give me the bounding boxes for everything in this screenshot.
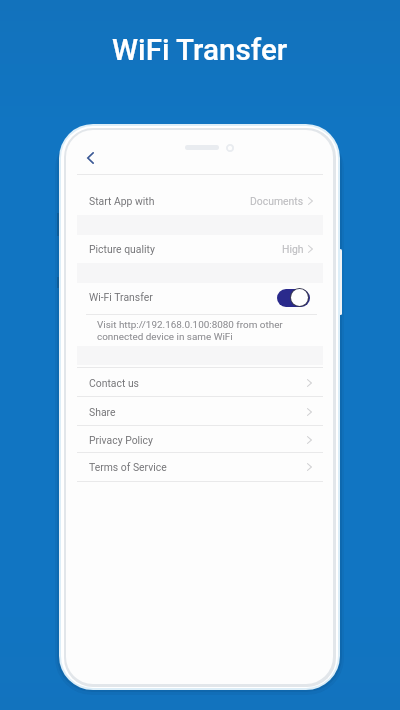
button[interactable]: Privacy Policy bbox=[77, 425, 323, 453]
button[interactable]: Back bbox=[77, 145, 103, 171]
button[interactable]: Picture quality bbox=[77, 235, 323, 263]
button[interactable]: Share bbox=[77, 396, 323, 425]
staticText: Privacy Policy bbox=[89, 434, 153, 446]
button[interactable]: Wi-Fi Transfer bbox=[77, 283, 323, 310]
staticText: Wi-Fi Transfer bbox=[89, 291, 153, 303]
staticText: Visit http://192.168.0.100:8080 from oth… bbox=[97, 319, 283, 343]
staticText: WiFi Transfer bbox=[112, 33, 288, 68]
button[interactable]: Contact us bbox=[77, 367, 323, 396]
button[interactable]: Terms of Service bbox=[77, 452, 323, 480]
staticText: Start App with bbox=[89, 195, 155, 207]
staticText: High bbox=[282, 243, 304, 255]
staticText: Contact us bbox=[89, 377, 139, 389]
staticText: Share bbox=[89, 406, 116, 418]
staticText: Picture quality bbox=[89, 243, 155, 255]
button[interactable]: Start App with bbox=[77, 187, 323, 215]
staticText: Terms of Service bbox=[89, 461, 167, 473]
staticText: Documents bbox=[250, 195, 304, 207]
